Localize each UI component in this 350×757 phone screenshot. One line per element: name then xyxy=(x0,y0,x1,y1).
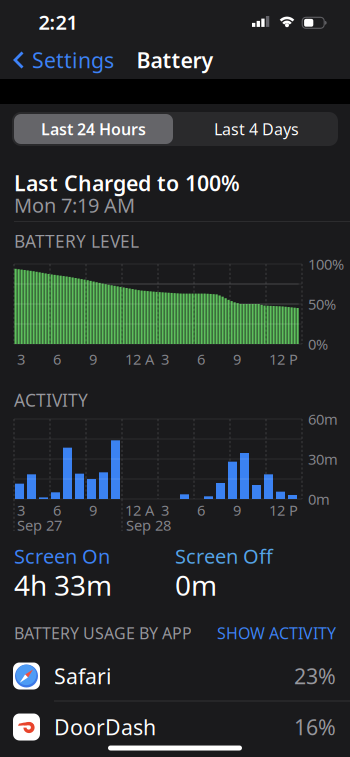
staticText: Screen On xyxy=(14,543,110,569)
staticText: 0% xyxy=(308,334,328,354)
staticText: Sep 27 xyxy=(17,515,62,535)
staticText: 9 xyxy=(89,500,97,520)
staticText: 3 xyxy=(161,349,169,369)
staticText: Mon 7:19 AM xyxy=(14,192,135,218)
staticText: 0m xyxy=(308,489,330,509)
button[interactable]: SHOW ACTIVITY xyxy=(0,0,350,757)
staticText: 2:21 xyxy=(38,9,77,35)
staticText: SHOW ACTIVITY xyxy=(217,622,336,644)
staticText: 3 xyxy=(17,349,25,369)
staticText: 6 xyxy=(197,500,205,520)
staticText: Settings xyxy=(32,46,114,74)
staticText: 0m xyxy=(175,566,217,604)
staticText: 16% xyxy=(294,713,336,741)
button[interactable]: Safari xyxy=(0,651,350,701)
staticText: 12 A xyxy=(125,500,154,520)
staticText: Safari xyxy=(54,662,112,690)
staticText: 3 xyxy=(17,500,25,520)
staticText: Screen Off xyxy=(175,543,273,569)
staticText: Battery xyxy=(136,46,213,74)
staticText: 9 xyxy=(89,349,97,369)
staticText: 30m xyxy=(308,449,338,469)
staticText: 6 xyxy=(53,349,61,369)
button[interactable]: Last 24 Hours xyxy=(14,114,173,144)
staticText: 6 xyxy=(197,349,205,369)
staticText: 4h 33m xyxy=(14,566,112,604)
button[interactable]: DoorDash xyxy=(0,702,350,752)
button[interactable]: Last 4 Days xyxy=(177,114,336,144)
staticText: ACTIVITY xyxy=(14,388,88,411)
staticText: 9 xyxy=(233,349,241,369)
staticText: Sep 28 xyxy=(126,515,171,535)
staticText: 12 P xyxy=(269,500,298,520)
staticText: BATTERY LEVEL xyxy=(14,229,139,252)
staticText: 60m xyxy=(308,409,338,429)
staticText: 12 P xyxy=(269,349,298,369)
staticText: 12 A xyxy=(125,349,154,369)
staticText: 23% xyxy=(294,662,336,690)
staticText: 50% xyxy=(308,294,336,314)
staticText: Last Charged to 100% xyxy=(14,169,240,197)
staticText: 9 xyxy=(233,500,241,520)
staticText: Last 24 Hours xyxy=(41,118,146,140)
button[interactable]: Back to Settings xyxy=(13,40,163,80)
staticText: BATTERY USAGE BY APP xyxy=(14,622,192,644)
staticText: Last 4 Days xyxy=(214,118,299,140)
staticText: DoorDash xyxy=(54,713,156,741)
staticText: 6 xyxy=(53,500,61,520)
staticText: 3 xyxy=(161,500,169,520)
staticText: 100% xyxy=(308,254,344,274)
